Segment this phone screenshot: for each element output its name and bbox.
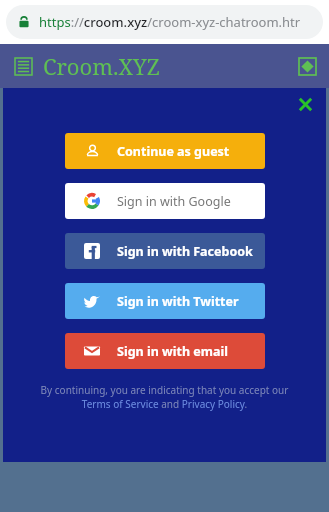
staticText: Sign in with Twitter xyxy=(117,293,239,310)
button[interactable]: https://croom.xyz/croom-xyz-chatroom.htr xyxy=(6,5,323,39)
staticText: Continue as guest xyxy=(117,143,230,160)
staticText: Sign in with email xyxy=(117,343,228,360)
staticText: Croom.XYZ xyxy=(43,51,160,81)
staticText: Sign in with Facebook xyxy=(117,243,253,260)
button[interactable]: Close xyxy=(293,92,317,116)
button[interactable]: Continue as guest xyxy=(65,133,265,169)
button[interactable]: Sign in with Google xyxy=(65,183,265,219)
button[interactable]: Sign in with Facebook xyxy=(65,233,265,269)
button[interactable]: App xyxy=(297,56,317,76)
staticText: Sign in with Google xyxy=(117,193,231,210)
button[interactable]: Menu xyxy=(12,55,34,77)
staticText: https://croom.xyz/croom-xyz-chatroom.htr xyxy=(39,13,301,31)
button[interactable]: Sign in with Twitter xyxy=(65,283,265,319)
staticText: By continuing, you are indicating that y… xyxy=(33,383,296,411)
button[interactable]: Sign in with email xyxy=(65,333,265,369)
